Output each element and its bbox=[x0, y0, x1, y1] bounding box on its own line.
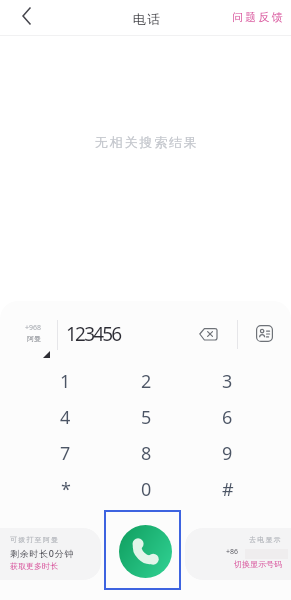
staticText: 5 bbox=[141, 405, 152, 430]
staticText: # bbox=[222, 477, 234, 502]
staticText: +968 bbox=[25, 323, 42, 333]
staticText: 4 bbox=[60, 405, 71, 430]
staticText: 问题反馈 bbox=[232, 10, 285, 24]
button[interactable]: 1 bbox=[25, 363, 106, 399]
button[interactable]: 可拨打至阿曼 bbox=[0, 528, 101, 580]
staticText: 3 bbox=[222, 369, 233, 394]
button[interactable]: 5 bbox=[106, 399, 187, 435]
button[interactable]: 7 bbox=[25, 435, 106, 471]
staticText: 123456 bbox=[66, 321, 121, 347]
button[interactable]: 8 bbox=[106, 435, 187, 471]
staticText: 2 bbox=[141, 369, 152, 394]
staticText: 6 bbox=[222, 405, 233, 430]
staticText: 阿曼 bbox=[27, 334, 41, 343]
button[interactable]: 0 bbox=[106, 471, 187, 507]
staticText: 0 bbox=[141, 477, 152, 502]
button[interactable]: Backspace bbox=[190, 316, 225, 351]
button[interactable]: 问题反馈 bbox=[230, 6, 286, 28]
staticText: 1 bbox=[60, 369, 71, 394]
button[interactable]: +968 bbox=[16, 323, 50, 347]
staticText: 无相关搜索结果 bbox=[95, 134, 199, 150]
staticText: 获取更多时长 bbox=[10, 561, 58, 571]
button[interactable]: * bbox=[25, 471, 106, 507]
button[interactable]: Contacts bbox=[246, 315, 282, 351]
button[interactable]: 去电显示 bbox=[185, 528, 291, 580]
staticText: 可拨打至阿曼 bbox=[10, 535, 60, 544]
staticText: 切换显示号码 bbox=[234, 559, 282, 569]
staticText: 7 bbox=[60, 441, 71, 466]
button[interactable]: Back bbox=[11, 1, 41, 31]
button[interactable]: # bbox=[187, 471, 268, 507]
button[interactable]: 6 bbox=[187, 399, 268, 435]
staticText: 8 bbox=[141, 441, 152, 466]
button[interactable]: 2 bbox=[106, 363, 187, 399]
staticText: +86 bbox=[226, 547, 239, 557]
staticText: 电话 bbox=[132, 11, 161, 27]
button[interactable]: 4 bbox=[25, 399, 106, 435]
staticText: 9 bbox=[222, 441, 233, 466]
staticText: * bbox=[61, 477, 71, 502]
button[interactable]: Call bbox=[119, 525, 172, 578]
staticText: 去电显示 bbox=[249, 535, 282, 544]
button[interactable]: 3 bbox=[187, 363, 268, 399]
staticText: 剩余时长0分钟 bbox=[10, 547, 75, 559]
button[interactable]: 9 bbox=[187, 435, 268, 471]
